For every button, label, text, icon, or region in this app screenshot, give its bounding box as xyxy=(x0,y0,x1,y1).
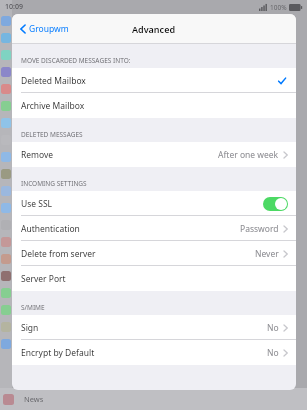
staticText: INCOMING SETTINGS xyxy=(21,179,87,188)
button[interactable]: Delete from server xyxy=(12,241,296,266)
staticText: DELETED MESSAGES xyxy=(21,130,83,139)
staticText: Authentication xyxy=(21,223,80,235)
staticText: MOVE DISCARDED MESSAGES INTO: xyxy=(21,56,131,65)
button[interactable]: Authentication xyxy=(12,216,296,241)
staticText: Groupwm xyxy=(29,23,69,35)
staticText: Remove xyxy=(21,149,54,161)
staticText: Sign xyxy=(21,322,39,334)
button[interactable]: Deleted Mailbox xyxy=(12,68,296,93)
button[interactable]: Sign xyxy=(12,315,296,340)
staticText: No xyxy=(267,322,279,334)
staticText: Server Port xyxy=(21,273,66,285)
staticText: S/MIME xyxy=(21,303,45,312)
button[interactable]: Groupwm xyxy=(18,19,71,39)
staticText: After one week xyxy=(218,149,279,161)
staticText: Never xyxy=(255,248,279,260)
staticText: No xyxy=(267,347,279,359)
button[interactable]: Remove xyxy=(12,142,296,167)
button[interactable]: Server Port xyxy=(12,266,296,291)
staticText: Advanced xyxy=(132,23,176,35)
staticText: 10:09 xyxy=(5,2,23,12)
staticText: News xyxy=(24,394,44,404)
staticText: Deleted Mailbox xyxy=(21,75,86,87)
button[interactable]: Archive Mailbox xyxy=(12,93,296,118)
staticText: Archive Mailbox xyxy=(21,100,85,112)
button[interactable]: Encrypt by Default xyxy=(12,340,296,365)
staticText: Use SSL xyxy=(21,198,53,210)
staticText: Delete from server xyxy=(21,248,96,260)
button[interactable]: Use SSL xyxy=(12,191,296,216)
staticText: Encrypt by Default xyxy=(21,347,95,359)
staticText: 100% xyxy=(270,3,287,12)
staticText: Password xyxy=(240,223,279,235)
button[interactable]: Use SSL toggle xyxy=(263,197,288,211)
